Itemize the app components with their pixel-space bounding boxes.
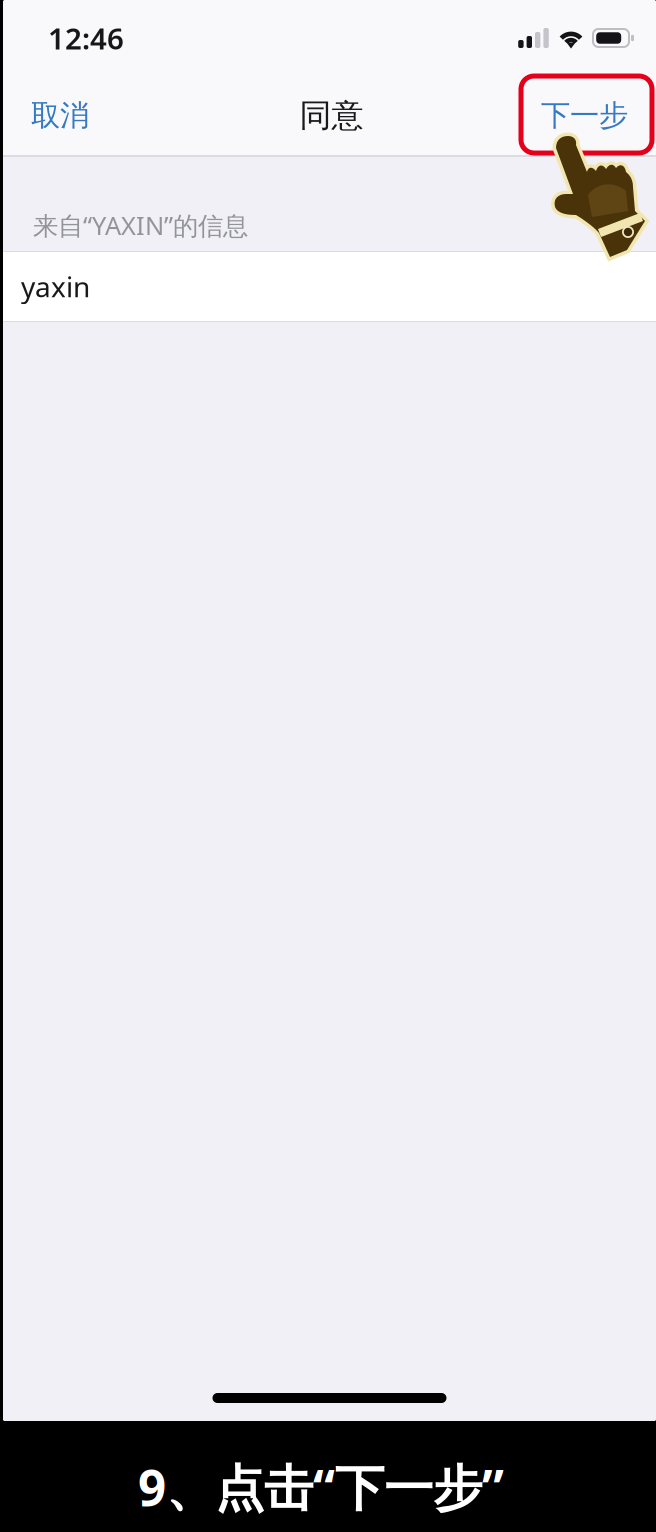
button[interactable]: 取消 xyxy=(17,81,103,149)
staticText: 12:46 xyxy=(48,18,124,57)
button[interactable]: 下一步 xyxy=(527,81,642,149)
staticText: 取消 xyxy=(31,97,89,133)
staticText: 9、点击“下一步” xyxy=(138,1454,504,1519)
button[interactable]: yaxin xyxy=(3,252,656,321)
staticText: 同意 xyxy=(299,96,363,135)
staticText: yaxin xyxy=(21,268,90,305)
staticText: 来自“YAXIN”的信息 xyxy=(33,208,248,242)
staticText: 下一步 xyxy=(541,97,628,133)
